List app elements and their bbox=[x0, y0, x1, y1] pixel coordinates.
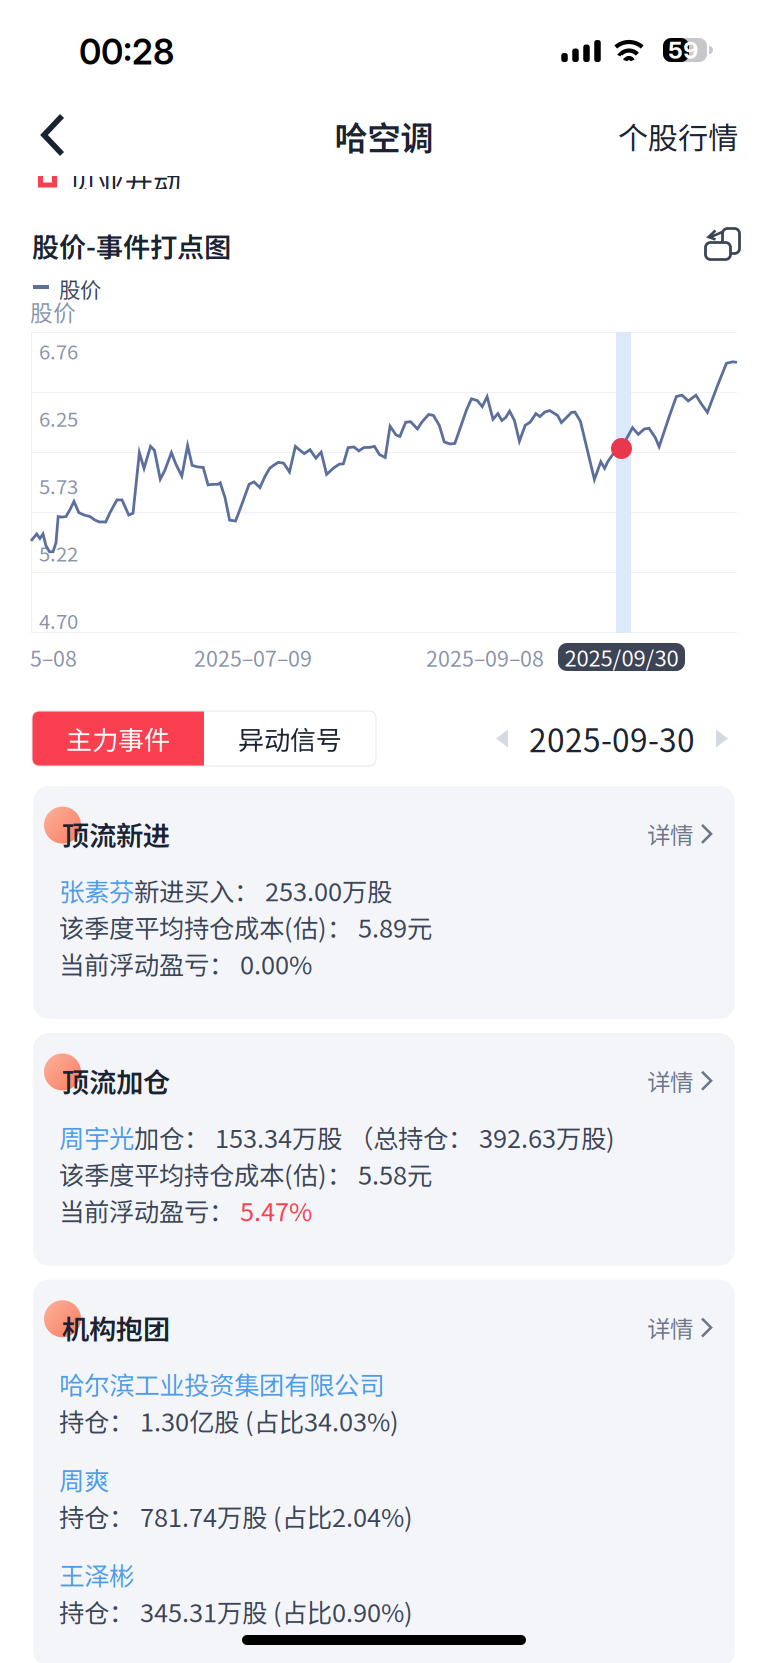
staticText: 详情 bbox=[647, 1311, 693, 1344]
staticText: 新进买入： 253.00万股 bbox=[134, 872, 392, 908]
button[interactable]: 前一天 bbox=[486, 728, 519, 748]
button[interactable]: 详情 bbox=[647, 1059, 713, 1103]
staticText: 当前浮动盈亏： bbox=[59, 1192, 240, 1229]
staticText: 顶流加仓 bbox=[62, 1061, 170, 1100]
staticText: 详情 bbox=[647, 817, 693, 851]
staticText: 周宇光 bbox=[59, 1119, 134, 1155]
staticText: 王泽彬 bbox=[59, 1556, 134, 1593]
staticText: 加仓： 153.34万股 （总持仓： 392.63万股) bbox=[134, 1119, 615, 1155]
staticText: 股价 bbox=[59, 273, 101, 304]
staticText: 张素芬 bbox=[59, 872, 134, 908]
staticText: 贝亚开动 bbox=[69, 160, 181, 200]
button[interactable]: 主力事件 bbox=[32, 711, 204, 766]
staticText: 顶流新进 bbox=[62, 814, 170, 854]
staticText: 哈尔滨工业投资集团有限公司 bbox=[59, 1365, 384, 1402]
staticText: 5.47% bbox=[240, 1192, 312, 1229]
staticText: 详情 bbox=[647, 1064, 693, 1098]
staticText: 机构抱团 bbox=[62, 1308, 170, 1347]
staticText: 周爽 bbox=[59, 1461, 109, 1497]
button[interactable]: 异动信号 bbox=[204, 711, 376, 766]
staticText: 2025–07–09 bbox=[194, 642, 312, 673]
button[interactable]: 横屏查看 bbox=[700, 224, 736, 258]
staticText: 股价-事件打点图 bbox=[32, 226, 231, 265]
staticText: 59 bbox=[668, 35, 698, 64]
staticText: 主力事件 bbox=[66, 720, 170, 757]
button[interactable]: 详情 bbox=[647, 812, 713, 856]
staticText: 2025/09/30 bbox=[564, 641, 678, 673]
staticText: 股价 bbox=[30, 295, 76, 328]
button[interactable]: 详情 bbox=[647, 1306, 713, 1349]
button[interactable]: 个股行情 bbox=[618, 102, 738, 170]
staticText: 5.22 bbox=[39, 538, 78, 567]
staticText: 当前浮动盈亏： 0.00% bbox=[59, 945, 312, 982]
staticText: 持仓： 781.74万股 (占比2.04%) bbox=[59, 1497, 413, 1534]
staticText: 6.76 bbox=[39, 336, 78, 365]
staticText: 该季度平均持仓成本(估)： 5.58元 bbox=[59, 1155, 432, 1192]
staticText: 哈空调 bbox=[334, 112, 433, 160]
staticText: 2025-09-30 bbox=[529, 716, 695, 761]
staticText: 6.25 bbox=[39, 403, 78, 433]
staticText: 个股行情 bbox=[618, 114, 738, 158]
staticText: 该季度平均持仓成本(估)： 5.89元 bbox=[59, 908, 432, 945]
staticText: 5–08 bbox=[30, 642, 77, 673]
staticText: 异动信号 bbox=[238, 720, 342, 757]
button[interactable]: 返回 bbox=[24, 108, 84, 164]
staticText: 2025–09–08 bbox=[426, 642, 544, 673]
staticText: 持仓： 1.30亿股 (占比34.03%) bbox=[59, 1402, 399, 1439]
button[interactable]: 后一天 bbox=[705, 728, 738, 748]
staticText: 4.70 bbox=[39, 605, 78, 635]
staticText: 持仓： 345.31万股 (占比0.90%) bbox=[59, 1593, 413, 1630]
staticText: 00:28 bbox=[79, 31, 174, 73]
staticText: 5.73 bbox=[39, 471, 78, 500]
